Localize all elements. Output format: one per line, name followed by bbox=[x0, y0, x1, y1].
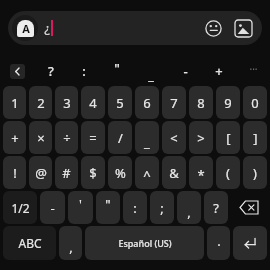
button[interactable]: [ bbox=[216, 121, 240, 154]
staticText: ; bbox=[160, 199, 164, 217]
staticText: & bbox=[169, 164, 179, 182]
button[interactable]: ··· bbox=[236, 56, 270, 86]
staticText: ( bbox=[226, 164, 230, 182]
staticText: 8 bbox=[197, 94, 205, 112]
button[interactable]: + bbox=[3, 121, 26, 154]
staticText: ÷ bbox=[63, 129, 71, 147]
button[interactable]: × bbox=[29, 121, 52, 154]
button[interactable]: . bbox=[207, 226, 230, 260]
button[interactable]: Stickers bbox=[198, 13, 228, 43]
button[interactable]: = bbox=[81, 121, 105, 154]
staticText: : bbox=[82, 62, 86, 80]
staticText: % bbox=[115, 164, 126, 182]
button[interactable]: & bbox=[162, 156, 186, 189]
staticText: - bbox=[183, 62, 188, 80]
button[interactable]: 0 bbox=[243, 86, 267, 119]
button[interactable]: " bbox=[96, 191, 120, 224]
button[interactable]: ( bbox=[216, 156, 240, 189]
button[interactable]: ! bbox=[3, 156, 26, 189]
button[interactable]: 7 bbox=[162, 86, 186, 119]
button[interactable]: 5 bbox=[108, 86, 132, 119]
button[interactable]: $ bbox=[81, 156, 105, 189]
button[interactable]: 2 bbox=[29, 86, 52, 119]
button[interactable]: " bbox=[100, 56, 134, 86]
button[interactable]: ? bbox=[34, 56, 67, 86]
button[interactable]: % bbox=[108, 156, 132, 189]
staticText: _ bbox=[144, 133, 150, 151]
button[interactable]: 9 bbox=[216, 86, 240, 119]
staticText: , bbox=[69, 238, 73, 256]
button[interactable]: ] bbox=[243, 121, 267, 154]
button[interactable]: _ bbox=[135, 121, 159, 154]
staticText: ¿ bbox=[44, 19, 50, 37]
button[interactable]: - bbox=[168, 56, 202, 86]
staticText: ' bbox=[79, 195, 82, 213]
staticText: 0 bbox=[251, 94, 259, 112]
button[interactable]: ^ bbox=[135, 156, 159, 189]
button[interactable]: 3 bbox=[55, 86, 78, 119]
button[interactable]: ; bbox=[150, 191, 174, 224]
staticText: + bbox=[11, 129, 19, 147]
button[interactable]: 1 bbox=[3, 86, 26, 119]
staticText: × bbox=[37, 129, 45, 147]
staticText: : bbox=[133, 199, 137, 217]
staticText: ! bbox=[13, 164, 17, 182]
staticText: # bbox=[62, 164, 71, 182]
button[interactable]: + bbox=[202, 56, 236, 86]
staticText: > bbox=[197, 129, 205, 147]
staticText: 1/2 bbox=[11, 200, 30, 216]
staticText: 9 bbox=[224, 94, 232, 112]
staticText: < bbox=[170, 129, 178, 147]
button[interactable]: 6 bbox=[135, 86, 159, 119]
staticText: / bbox=[118, 129, 123, 147]
staticText: = bbox=[89, 129, 97, 147]
button[interactable]: ' bbox=[68, 191, 93, 224]
button[interactable]: Voice typing bbox=[12, 15, 38, 41]
staticText: . bbox=[217, 232, 221, 250]
button[interactable]: : bbox=[67, 56, 100, 86]
button[interactable]: Español (US) bbox=[85, 226, 204, 260]
staticText: ··· bbox=[249, 62, 258, 76]
staticText: + bbox=[215, 62, 223, 80]
staticText: 1 bbox=[11, 94, 19, 112]
staticText: @ bbox=[35, 164, 47, 182]
staticText: Español (US) bbox=[118, 237, 172, 249]
button[interactable]: ? bbox=[204, 191, 228, 224]
staticText: ABC bbox=[18, 235, 42, 251]
button[interactable]: 4 bbox=[81, 86, 105, 119]
button[interactable]: , bbox=[177, 191, 201, 224]
button[interactable]: ÷ bbox=[55, 121, 78, 154]
staticText: ^ bbox=[143, 166, 151, 184]
staticText: A bbox=[22, 21, 30, 36]
button[interactable]: Insert image bbox=[228, 13, 258, 43]
staticText: _ bbox=[148, 66, 154, 84]
button[interactable]: 1/2 bbox=[3, 191, 37, 224]
button[interactable]: Backspace bbox=[231, 191, 267, 224]
button[interactable]: < bbox=[162, 121, 186, 154]
button[interactable]: : bbox=[123, 191, 147, 224]
button[interactable]: > bbox=[189, 121, 213, 154]
button[interactable]: * bbox=[189, 156, 213, 189]
button[interactable]: # bbox=[55, 156, 78, 189]
staticText: 4 bbox=[89, 94, 97, 112]
staticText: ? bbox=[48, 62, 54, 80]
button[interactable]: @ bbox=[29, 156, 52, 189]
staticText: - bbox=[50, 199, 55, 217]
button[interactable]: - bbox=[40, 191, 65, 224]
staticText: 3 bbox=[63, 94, 71, 112]
staticText: 7 bbox=[170, 94, 178, 112]
staticText: " bbox=[114, 59, 120, 77]
button[interactable]: / bbox=[108, 121, 132, 154]
button[interactable]: Enter bbox=[233, 226, 267, 260]
staticText: " bbox=[105, 195, 111, 213]
staticText: [ bbox=[226, 129, 231, 147]
staticText: ) bbox=[253, 164, 257, 182]
button[interactable]: ) bbox=[243, 156, 267, 189]
button[interactable]: , bbox=[59, 226, 82, 260]
staticText: * bbox=[197, 166, 205, 184]
button[interactable]: 8 bbox=[189, 86, 213, 119]
button[interactable]: ABC bbox=[3, 226, 56, 260]
button[interactable]: Previous bbox=[0, 56, 34, 86]
button[interactable]: _ bbox=[134, 56, 168, 86]
staticText: ? bbox=[213, 199, 219, 217]
